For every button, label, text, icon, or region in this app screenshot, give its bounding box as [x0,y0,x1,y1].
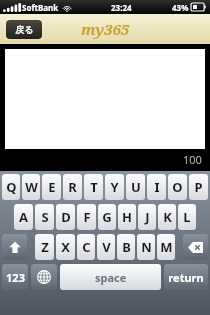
staticText: E [48,178,56,196]
button[interactable]: N [137,234,155,260]
button[interactable]: V [97,234,115,260]
staticText: S [41,208,49,226]
button[interactable]: Z [35,234,54,260]
staticText: G [102,208,112,226]
staticText: A [19,208,28,226]
button[interactable]: P [189,174,208,200]
staticText: L [183,208,191,226]
button[interactable]: M [157,234,175,260]
staticText: return [168,270,204,285]
staticText: O [172,178,183,196]
button[interactable]: I [147,174,166,200]
button[interactable]: G [98,204,116,230]
button[interactable]: space [60,264,161,290]
staticText: H [122,208,132,226]
staticText: R [68,178,77,196]
button[interactable]: Backspace [183,234,208,260]
staticText: 43% [172,2,189,13]
button[interactable]: Q [2,174,20,200]
button[interactable]: W [22,174,40,200]
button[interactable]: Shift [2,234,27,260]
staticText: J [145,208,150,226]
staticText: 100 [183,152,202,167]
staticText: M [160,238,173,256]
button[interactable]: K [158,204,176,230]
button[interactable]: C [77,234,95,260]
staticText: space [95,270,127,285]
staticText: N [141,238,152,256]
staticText: I [154,178,160,196]
staticText: C [82,238,91,256]
button[interactable]: X [56,234,75,260]
button[interactable]: E [42,174,61,200]
staticText: Z [41,238,49,256]
button[interactable]: 123 [2,264,28,290]
staticText: U [131,178,141,196]
staticText: T [90,178,98,196]
button[interactable]: Change keyboard language [31,264,57,290]
staticText: B [122,238,131,256]
staticText: Q [6,178,17,196]
staticText: V [102,238,111,256]
staticText: Y [110,178,119,196]
staticText: 23:24 [111,2,132,13]
button[interactable]: L [178,204,196,230]
staticText: K [163,208,172,226]
button[interactable]: O [168,174,187,200]
staticText: my365 [81,19,130,39]
button[interactable]: R [63,174,82,200]
staticText: D [61,208,71,226]
button[interactable]: return [164,264,208,290]
button[interactable]: F [77,204,96,230]
staticText: SoftBank [22,2,59,13]
button[interactable]: U [126,174,145,200]
button[interactable]: A [14,204,33,230]
staticText: X [61,238,70,256]
button[interactable]: H [118,204,136,230]
staticText: 戻る [15,24,34,35]
staticText: 123 [6,270,25,285]
staticText: P [194,178,203,196]
button[interactable]: B [117,234,135,260]
button[interactable]: T [84,174,103,200]
button[interactable]: J [138,204,156,230]
button[interactable]: 戻る [6,20,42,39]
button[interactable]: D [56,204,75,230]
button[interactable]: Y [105,174,124,200]
staticText: W [25,178,38,196]
button[interactable]: S [35,204,54,230]
staticText: F [83,208,91,226]
